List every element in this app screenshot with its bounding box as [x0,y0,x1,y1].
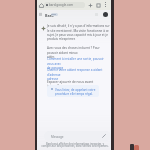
staticText: Je suis désolé, il n'y a pas d'informati… [47,24,113,40]
button[interactable]: Send message [102,134,106,138]
staticText: Espacer ajouvrir de nous avant intervall… [47,80,97,88]
button[interactable] [44,2,85,8]
staticText: Comment à installer une sortie, pouvoir … [47,57,108,69]
button[interactable] [51,13,58,16]
button[interactable]: Home [39,3,44,8]
button[interactable] [47,85,99,97]
button[interactable]: Account [103,12,108,17]
button[interactable]: More options [103,2,108,7]
staticText: Obtenir votre aidant response a aidant d… [47,68,109,80]
staticText: Avec vous des choses incluent ? Pour pou… [47,46,111,58]
button[interactable]: Tabs [96,3,101,8]
button[interactable] [44,131,111,141]
staticText: Bard peut afficher des informations inex… [41,142,109,148]
button[interactable]: New tab [88,3,93,8]
staticText: Bard [45,13,57,18]
staticText: Message [51,135,65,139]
staticText: Vous listez, de appelant votre procédure… [55,88,98,96]
staticText: bard.google.com [49,3,85,7]
